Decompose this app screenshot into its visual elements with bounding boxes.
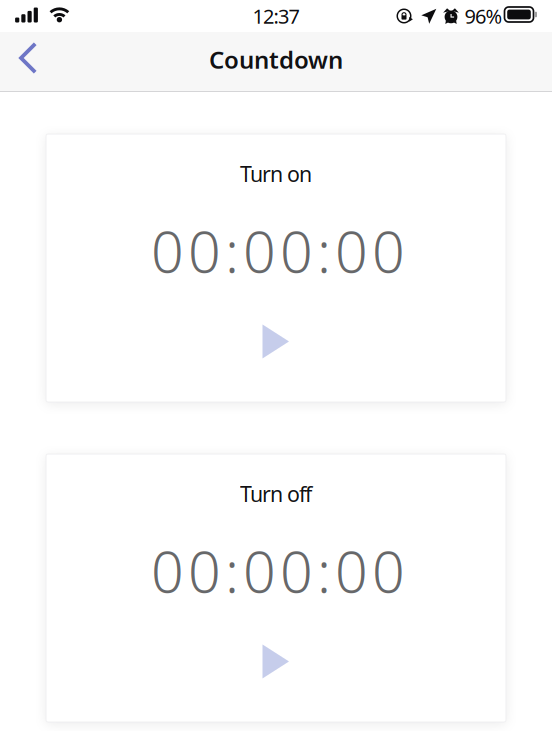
button[interactable]: Start Turn off countdown (252, 634, 299, 688)
staticText: 00:00:00 (151, 532, 405, 608)
staticText: 00:00:00 (151, 212, 405, 288)
staticText: Turn off (240, 480, 312, 508)
staticText: 96% (464, 3, 502, 29)
staticText: Countdown (209, 44, 343, 75)
staticText: Turn on (240, 160, 312, 188)
button[interactable]: Back (0, 32, 52, 86)
button[interactable]: Start Turn on countdown (252, 314, 299, 368)
staticText: 12:37 (252, 3, 299, 29)
